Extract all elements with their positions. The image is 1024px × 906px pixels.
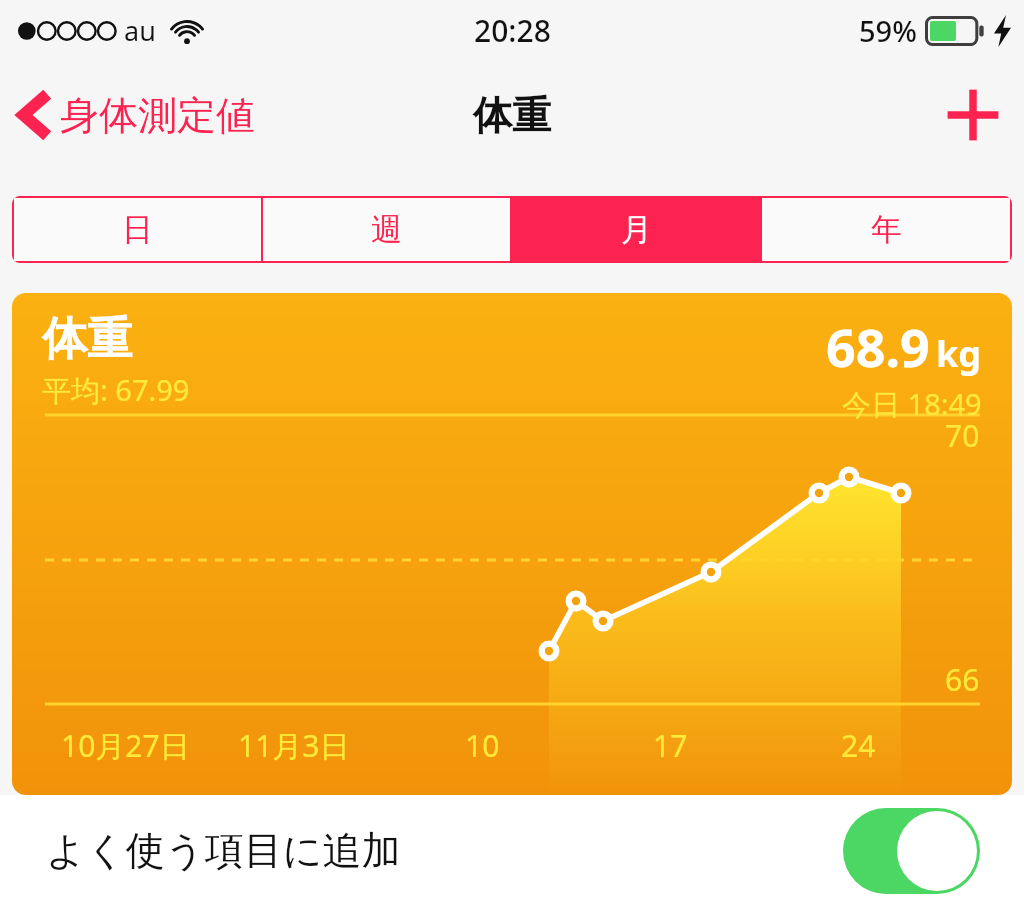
staticText: 10月27日 (61, 725, 190, 766)
button[interactable]: Add data (938, 80, 1008, 150)
staticText: 身体測定値 (60, 91, 255, 140)
button[interactable]: 身体測定値 (14, 81, 259, 149)
staticText: 66 (945, 659, 980, 700)
staticText: 週 (371, 210, 402, 249)
staticText: 平均: 67.99 (42, 370, 190, 410)
staticText: よく使う項目に追加 (46, 826, 401, 875)
staticText: 10 (465, 725, 500, 766)
staticText: 11月3日 (238, 725, 350, 766)
staticText: au (124, 12, 156, 49)
button[interactable]: 月 (512, 198, 760, 261)
staticText: 体重 (473, 91, 551, 140)
staticText: 17 (653, 725, 688, 766)
staticText: kg (936, 329, 982, 378)
staticText: 今日 18:49 (842, 384, 982, 424)
staticText: 日 (122, 210, 153, 249)
staticText: 月 (621, 210, 652, 249)
button[interactable]: よく使う項目に追加 (0, 795, 1024, 906)
button[interactable]: Add to favorites, on (843, 808, 980, 894)
staticText: 70 (945, 415, 980, 456)
staticText: 24 (841, 725, 876, 766)
button[interactable]: 週 (263, 198, 510, 261)
staticText: 59% (859, 11, 917, 50)
staticText: 体重 (42, 311, 132, 368)
button[interactable]: 70 (12, 293, 1012, 795)
staticText: 20:28 (474, 10, 551, 51)
button[interactable]: 日 (14, 198, 261, 261)
button[interactable]: 年 (762, 198, 1010, 261)
staticText: 年 (871, 210, 902, 249)
staticText: 68.9 (826, 311, 930, 382)
